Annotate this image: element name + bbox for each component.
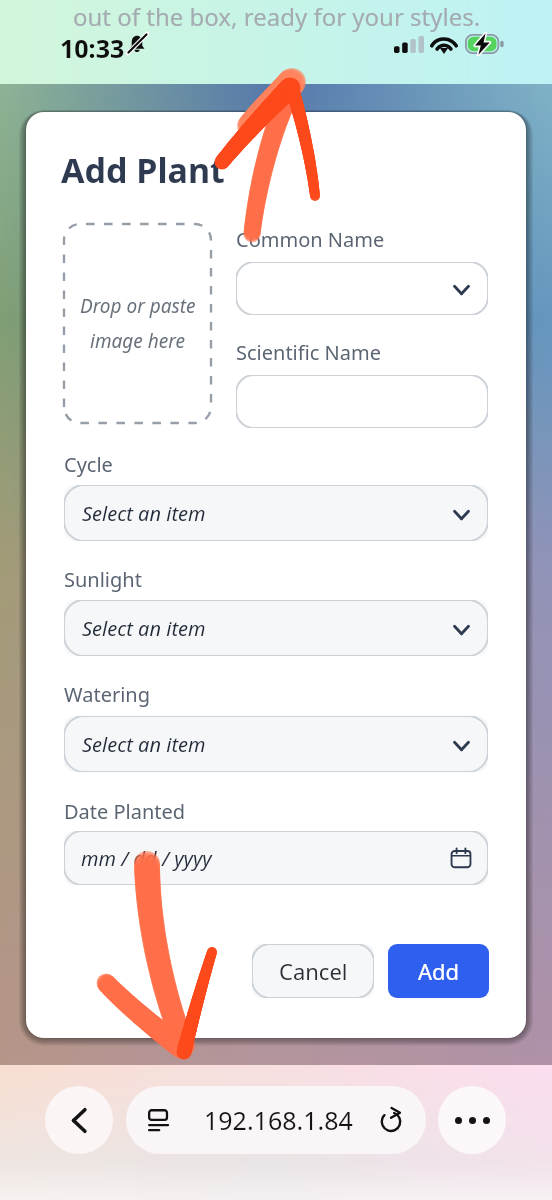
staticText: Sunlight <box>64 566 142 593</box>
button[interactable]: More options <box>438 1086 506 1154</box>
staticText: Date Planted <box>64 798 186 825</box>
staticText: 192.168.1.84 <box>204 1103 353 1137</box>
button[interactable]: Cancel <box>252 944 374 998</box>
staticText: Select an item <box>82 500 206 527</box>
staticText: Add Plant <box>61 147 225 193</box>
staticText: Common Name <box>236 226 385 253</box>
button[interactable]: Select an item <box>64 600 488 656</box>
button[interactable]: Reload <box>370 1099 412 1141</box>
staticText: Cycle <box>64 451 113 478</box>
staticText: 10:33 <box>60 31 125 65</box>
button[interactable]: Add <box>388 944 489 998</box>
staticText: Scientific Name <box>236 339 381 366</box>
staticText: Watering <box>64 681 150 708</box>
button[interactable]: 192.168.1.84 <box>126 1086 426 1154</box>
button[interactable]: Select an item <box>64 716 488 772</box>
button[interactable]: Back <box>45 1086 113 1154</box>
staticText: Select an item <box>82 731 206 758</box>
button[interactable]: Drop or paste <box>63 223 212 424</box>
button[interactable]: Select an item <box>64 485 488 541</box>
staticText: mm / dd / yyyy <box>81 845 212 872</box>
button[interactable] <box>236 262 488 315</box>
staticText: image here <box>90 328 185 354</box>
button[interactable] <box>236 375 488 428</box>
staticText: out of the box, ready for your styles. <box>73 0 481 33</box>
staticText: Cancel <box>279 956 348 986</box>
staticText: Add <box>418 956 460 986</box>
button[interactable]: mm / dd / yyyy <box>64 831 488 885</box>
staticText: Drop or paste <box>80 293 196 319</box>
staticText: Select an item <box>82 615 206 642</box>
